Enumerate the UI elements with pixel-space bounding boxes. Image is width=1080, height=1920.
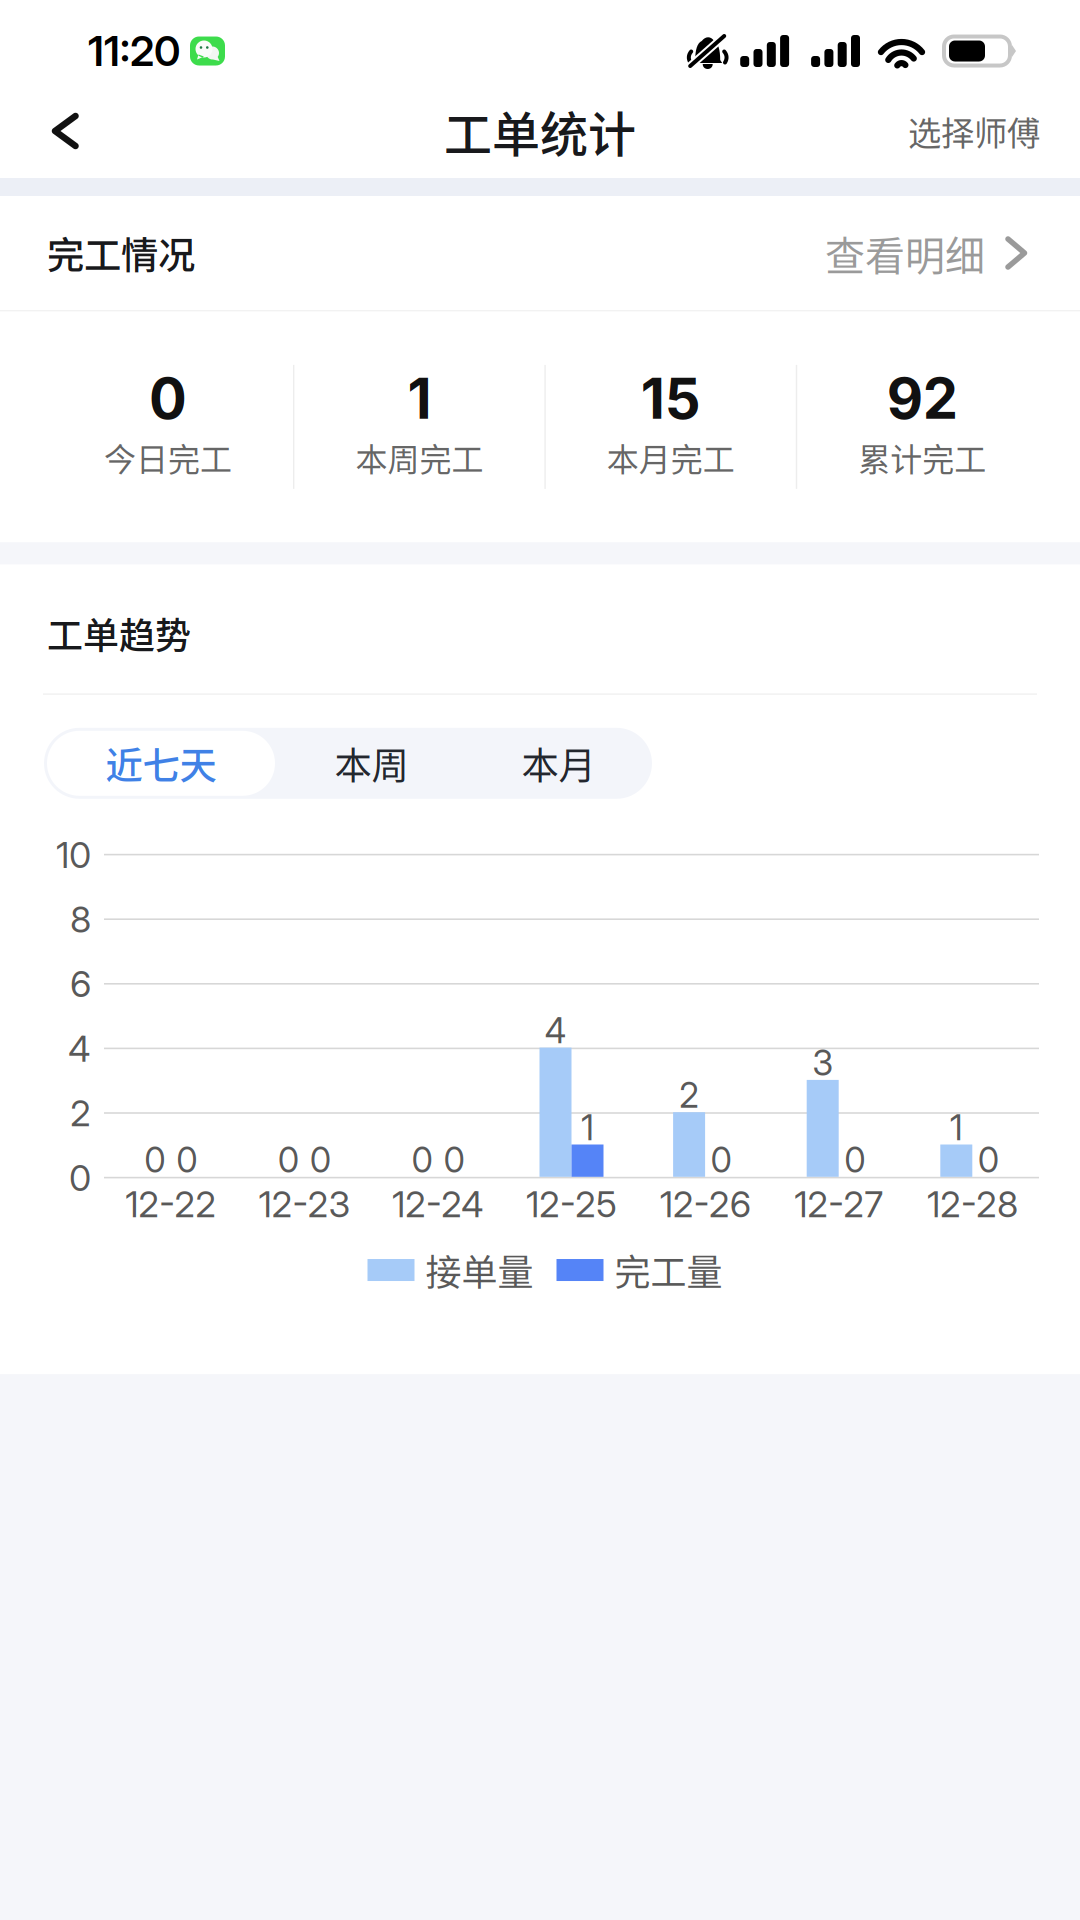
- button[interactable]: 选择师傅: [890, 81, 1058, 181]
- staticText: 3: [812, 1042, 833, 1084]
- staticText: 本月: [521, 736, 595, 790]
- staticText: 工单趋势: [47, 607, 191, 659]
- staticText: 0: [176, 1139, 197, 1181]
- staticText: 0: [69, 1156, 91, 1200]
- staticText: 0: [844, 1139, 865, 1181]
- staticText: 2: [70, 1091, 91, 1135]
- staticText: 12-24: [392, 1182, 484, 1226]
- staticText: 12-28: [927, 1182, 1018, 1226]
- staticText: 0: [711, 1139, 732, 1181]
- staticText: 完工情况: [47, 226, 195, 280]
- staticText: 工单统计: [444, 96, 636, 166]
- staticText: 4: [544, 1010, 566, 1052]
- staticText: 15: [641, 364, 701, 432]
- staticText: 0: [310, 1139, 331, 1181]
- staticText: 12-26: [660, 1182, 751, 1226]
- staticText: 0: [149, 364, 187, 432]
- staticText: 92: [887, 364, 958, 432]
- button[interactable]: 近七天: [44, 728, 278, 799]
- staticText: 1: [950, 1107, 963, 1148]
- staticText: 12-22: [125, 1182, 216, 1226]
- staticText: 完工量: [614, 1244, 722, 1296]
- button[interactable]: 返回: [26, 89, 104, 173]
- staticText: 选择师傅: [908, 107, 1040, 155]
- button[interactable]: 本周: [278, 728, 465, 799]
- staticText: 10: [56, 833, 91, 877]
- staticText: 11:20: [88, 26, 180, 76]
- staticText: 8: [70, 898, 91, 941]
- staticText: 1: [581, 1107, 594, 1148]
- staticText: 累计完工: [858, 434, 986, 480]
- staticText: 4: [68, 1027, 91, 1070]
- staticText: 本周: [334, 736, 408, 790]
- staticText: 接单量: [425, 1244, 533, 1296]
- staticText: 12-23: [258, 1182, 350, 1226]
- staticText: 本月完工: [607, 434, 735, 480]
- staticText: 6: [70, 962, 91, 1006]
- staticText: 近七天: [105, 736, 216, 790]
- staticText: 今日完工: [104, 434, 232, 480]
- staticText: 1: [407, 364, 431, 432]
- staticText: 查看明细: [825, 224, 985, 282]
- staticText: 0: [411, 1139, 432, 1181]
- button[interactable]: 完工情况: [0, 196, 1080, 310]
- staticText: 12-27: [794, 1182, 883, 1226]
- staticText: 2: [679, 1074, 699, 1116]
- staticText: 本周完工: [355, 434, 483, 480]
- button[interactable]: 本月: [465, 728, 652, 799]
- staticText: 0: [978, 1139, 999, 1181]
- staticText: 0: [443, 1139, 464, 1181]
- staticText: 0: [278, 1139, 299, 1181]
- staticText: 12-25: [526, 1182, 617, 1226]
- staticText: 0: [144, 1139, 165, 1181]
